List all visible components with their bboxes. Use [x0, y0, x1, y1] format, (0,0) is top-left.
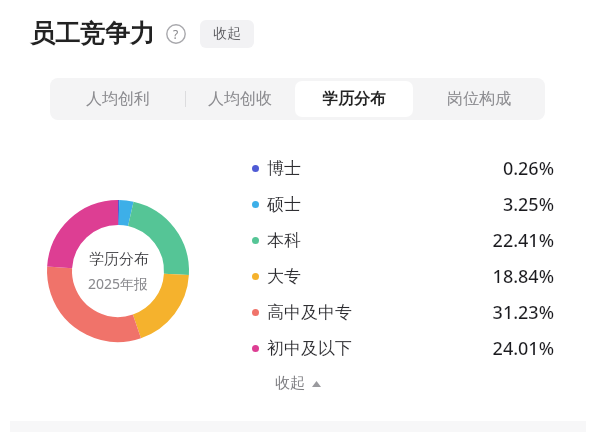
staticText: 收起 — [275, 374, 305, 393]
staticText: 员工竞争力 — [30, 18, 155, 49]
staticText: 博士 — [267, 158, 301, 179]
button[interactable]: 帮助 — [166, 24, 186, 44]
button[interactable]: 本科 — [252, 222, 554, 258]
staticText: 24.01% — [492, 336, 554, 361]
staticText: 人均创利 — [86, 89, 150, 109]
button[interactable]: 岗位构成 — [413, 78, 545, 120]
staticText: 高中及中专 — [267, 302, 352, 323]
button[interactable]: 学历分布 — [295, 78, 413, 120]
button[interactable]: 初中及以下 — [252, 330, 554, 366]
staticText: 硕士 — [267, 194, 301, 215]
staticText: 0.26% — [502, 156, 554, 181]
staticText: 3.25% — [502, 192, 554, 217]
staticText: 收起 — [213, 25, 241, 43]
staticText: 大专 — [267, 266, 301, 287]
staticText: 2025年报 — [88, 274, 149, 293]
button[interactable]: 博士 — [252, 150, 554, 186]
staticText: 18.84% — [492, 264, 554, 289]
button[interactable]: 收起 — [200, 20, 254, 48]
staticText: 学历分布 — [322, 89, 386, 109]
staticText: 岗位构成 — [447, 89, 511, 109]
button[interactable]: 人均创利 — [50, 78, 185, 120]
button[interactable]: 硕士 — [252, 186, 554, 222]
button[interactable]: 高中及中专 — [252, 294, 554, 330]
staticText: ? — [173, 26, 179, 42]
button[interactable]: 大专 — [252, 258, 554, 294]
button[interactable]: 收起 — [257, 368, 339, 399]
staticText: 22.41% — [492, 228, 554, 253]
staticText: 学历分布 — [89, 250, 149, 269]
staticText: 初中及以下 — [267, 338, 352, 359]
staticText: 人均创收 — [208, 89, 272, 109]
button[interactable]: 人均创收 — [185, 78, 295, 120]
staticText: 31.23% — [492, 300, 554, 325]
staticText: 本科 — [267, 230, 301, 251]
